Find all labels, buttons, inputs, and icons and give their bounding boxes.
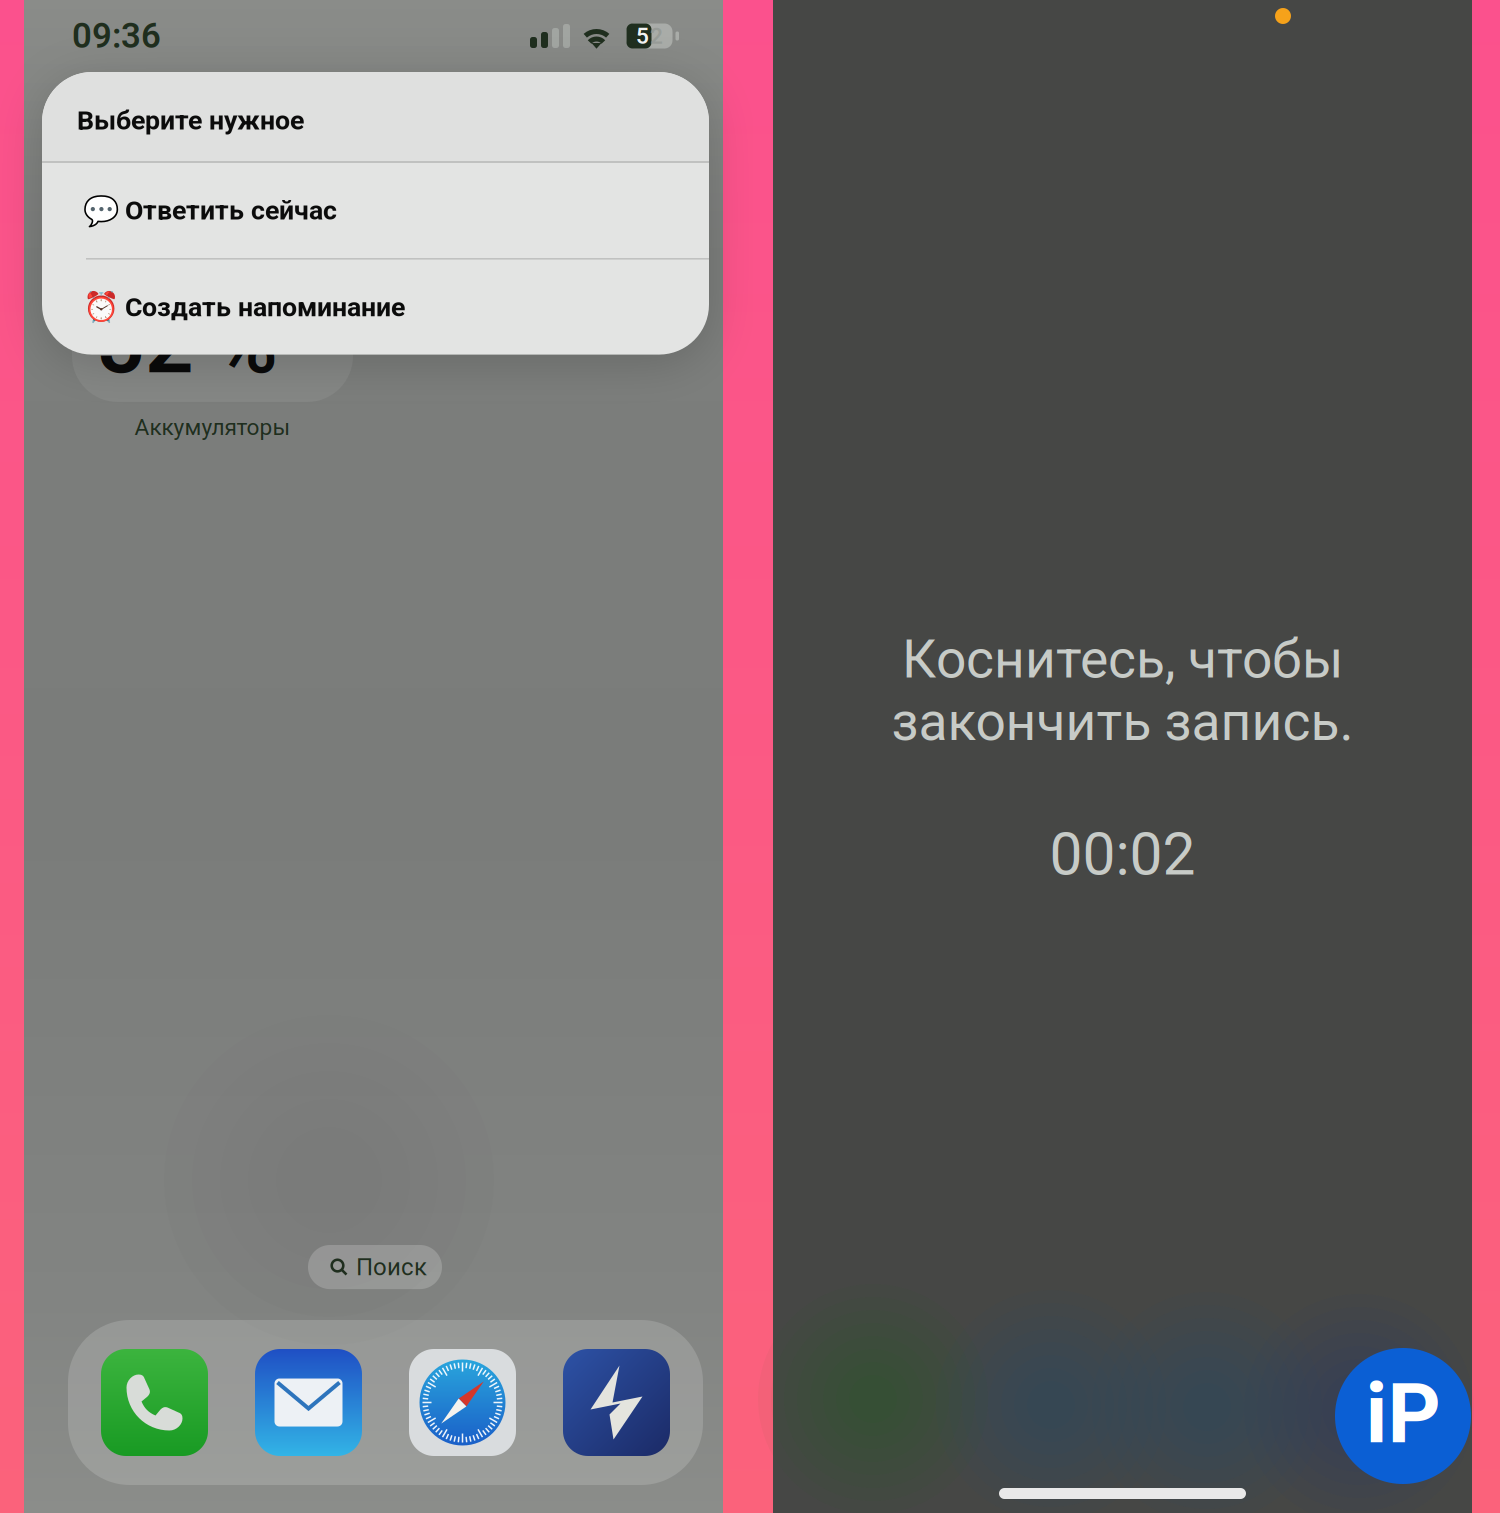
staticText: Коснитесь, чтобы xyxy=(902,628,1343,690)
staticText: Ответить сейчас xyxy=(125,195,337,226)
staticText: 52 % xyxy=(96,293,278,393)
staticText: ⏰ xyxy=(83,290,120,324)
button[interactable]: ⏰ xyxy=(42,260,709,355)
button[interactable]: Phone xyxy=(101,1349,208,1456)
staticText: 09:36 xyxy=(72,16,161,56)
staticText: закончить запись. xyxy=(891,690,1353,753)
staticText: 00:02 xyxy=(1049,820,1195,889)
button[interactable]: Mail xyxy=(255,1349,362,1456)
staticText: 5 xyxy=(636,23,649,49)
button[interactable]: Поиск xyxy=(308,1245,442,1289)
staticText: 💬 xyxy=(83,193,120,228)
staticText: Создать напоминание xyxy=(125,291,405,323)
button[interactable]: 💬 xyxy=(42,163,709,258)
staticText: Выберите нужное xyxy=(77,105,304,136)
button[interactable]: Safari xyxy=(409,1349,516,1456)
staticText: 2 xyxy=(650,23,663,49)
staticText: iP xyxy=(1365,1366,1440,1462)
staticText: Поиск xyxy=(356,1253,427,1281)
button[interactable]: Shortcuts xyxy=(563,1349,670,1456)
staticText: Аккумуляторы xyxy=(134,414,290,441)
